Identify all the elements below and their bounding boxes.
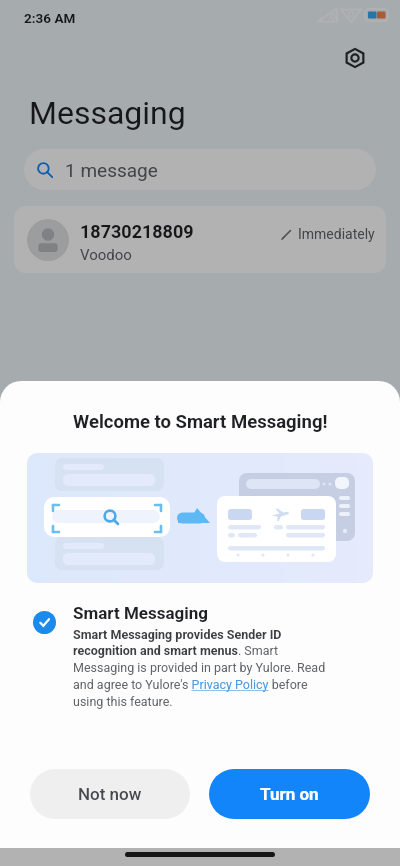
staticText: Not now xyxy=(78,784,142,804)
button[interactable]: 18730218809 xyxy=(14,206,386,273)
staticText: Smart Messaging provides Sender ID recog… xyxy=(73,627,328,709)
staticText: Voodoo xyxy=(80,246,132,264)
button[interactable]: 1 message xyxy=(24,149,376,190)
staticText: 2:36 AM xyxy=(24,10,76,26)
button[interactable]: Not now xyxy=(30,769,190,819)
staticText: Smart Messaging xyxy=(73,603,208,623)
button[interactable]: Turn on xyxy=(209,769,370,819)
staticText: Turn on xyxy=(260,784,319,804)
staticText: Messaging xyxy=(29,94,186,132)
staticText: 1 message xyxy=(65,159,158,181)
staticText: Immediately xyxy=(298,226,375,242)
button[interactable]: Settings xyxy=(343,46,367,70)
staticText: 18730218809 xyxy=(80,221,194,242)
staticText: Welcome to Smart Messaging! xyxy=(73,411,328,433)
